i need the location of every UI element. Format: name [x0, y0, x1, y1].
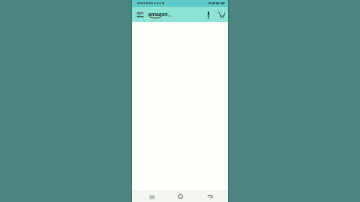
- button[interactable]: amazon: [148, 10, 169, 20]
- button[interactable]: Back: [205, 191, 216, 202]
- button[interactable]: Home: [175, 191, 186, 202]
- button[interactable]: Voice search: [204, 10, 213, 19]
- button[interactable]: Recents: [146, 191, 157, 202]
- staticText: .in: [168, 10, 169, 18]
- button[interactable]: Menu: [136, 10, 145, 19]
- button[interactable]: Cart: [217, 10, 226, 19]
- staticText: amazon: [148, 11, 168, 18]
